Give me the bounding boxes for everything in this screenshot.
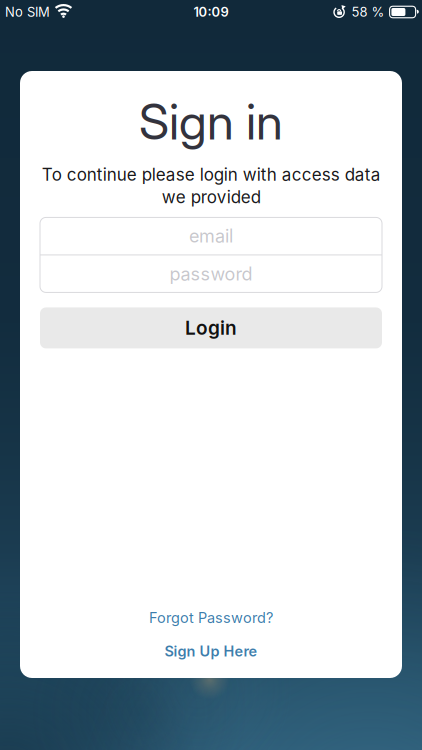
button[interactable]: Sign Up Here: [164, 642, 257, 660]
staticText: Forgot Password?: [149, 609, 273, 626]
staticText: 10:09: [193, 4, 228, 20]
staticText: Sign in: [139, 92, 283, 151]
staticText: Login: [185, 316, 237, 339]
staticText: Sign Up Here: [164, 642, 257, 660]
staticText: 58 %: [352, 4, 385, 20]
staticText: password: [169, 263, 252, 285]
button[interactable]: Forgot Password?: [149, 609, 273, 626]
staticText: No SIM: [5, 4, 50, 20]
staticText: To continue please login with access dat…: [41, 164, 380, 207]
secureTextField[interactable]: password: [40, 255, 382, 292]
staticText: email: [189, 225, 233, 247]
textField[interactable]: email: [40, 217, 382, 254]
button[interactable]: Login: [40, 307, 382, 348]
